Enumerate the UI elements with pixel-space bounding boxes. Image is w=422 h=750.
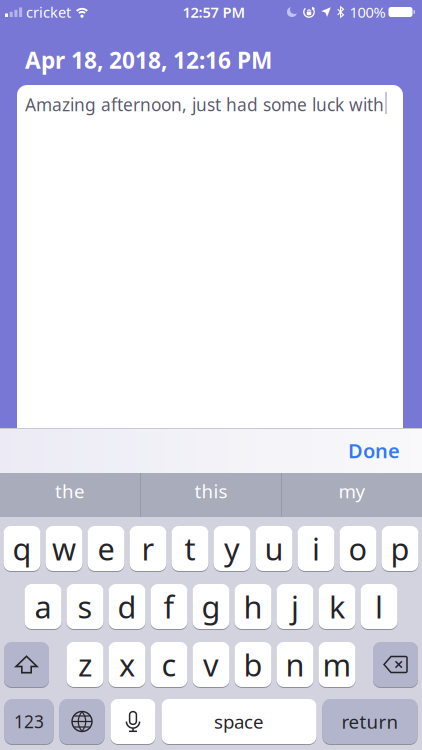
button[interactable]: w <box>45 526 82 571</box>
button[interactable]: b <box>234 642 271 687</box>
staticText: g <box>201 586 220 627</box>
button[interactable]: s <box>66 584 103 629</box>
button[interactable]: r <box>129 526 166 571</box>
staticText: b <box>243 644 262 685</box>
staticText: n <box>285 644 304 685</box>
button[interactable]: Done <box>348 437 422 464</box>
staticText: 123 <box>14 710 44 733</box>
button[interactable]: c <box>150 642 187 687</box>
staticText: 100% <box>349 2 385 22</box>
button[interactable]: return <box>322 699 417 744</box>
staticText: m <box>322 644 351 685</box>
button[interactable]: l <box>360 584 397 629</box>
button[interactable]: a <box>24 584 61 629</box>
button[interactable]: n <box>276 642 313 687</box>
button[interactable]: j <box>276 584 313 629</box>
staticText: s <box>77 586 92 627</box>
button[interactable]: h <box>234 584 271 629</box>
staticText: w <box>52 528 76 569</box>
staticText: this <box>194 479 227 503</box>
textField[interactable]: Amazing afternoon, just had some luck wi… <box>25 93 395 116</box>
staticText: k <box>329 586 345 627</box>
staticText: h <box>243 586 262 627</box>
staticText: space <box>214 709 264 734</box>
staticText: Amazing afternoon, just had some luck wi… <box>25 93 384 116</box>
staticText: Done <box>348 437 400 464</box>
staticText: x <box>119 644 135 685</box>
staticText: j <box>291 586 299 627</box>
button[interactable]: u <box>255 526 292 571</box>
staticText: return <box>341 709 398 734</box>
button[interactable]: Delete <box>373 642 418 687</box>
button[interactable]: m <box>318 642 355 687</box>
staticText: the <box>55 479 85 503</box>
button[interactable]: space <box>161 699 316 744</box>
button[interactable]: z <box>66 642 103 687</box>
button[interactable]: k <box>318 584 355 629</box>
staticText: cricket <box>26 2 71 22</box>
staticText: v <box>203 644 219 685</box>
staticText: y <box>224 528 240 569</box>
button[interactable]: f <box>150 584 187 629</box>
button[interactable]: o <box>339 526 376 571</box>
staticText: my <box>338 479 365 503</box>
staticText: l <box>375 586 383 627</box>
button[interactable]: d <box>108 584 145 629</box>
button[interactable]: x <box>108 642 145 687</box>
button[interactable]: this <box>141 473 281 517</box>
staticText: z <box>78 644 92 685</box>
staticText: p <box>390 528 409 569</box>
button[interactable]: 123 <box>4 699 53 744</box>
button[interactable]: Shift <box>4 642 49 687</box>
button[interactable]: v <box>192 642 229 687</box>
staticText: a <box>34 586 51 627</box>
button[interactable]: y <box>213 526 250 571</box>
staticText: t <box>184 528 195 569</box>
button[interactable]: i <box>297 526 334 571</box>
staticText: u <box>264 528 283 569</box>
button[interactable]: q <box>3 526 40 571</box>
button[interactable]: e <box>87 526 124 571</box>
staticText: o <box>348 528 367 569</box>
staticText: r <box>141 528 154 569</box>
button[interactable]: my <box>282 473 422 517</box>
staticText: Apr 18, 2018, 12:16 PM <box>25 45 272 75</box>
button[interactable]: Next keyboard <box>59 699 104 744</box>
staticText: q <box>12 528 31 569</box>
staticText: d <box>117 586 136 627</box>
button[interactable]: Dictate <box>110 699 155 744</box>
staticText: c <box>161 644 176 685</box>
staticText: 12:57 PM <box>182 2 245 22</box>
button[interactable]: the <box>0 473 140 517</box>
button[interactable]: g <box>192 584 229 629</box>
button[interactable]: t <box>171 526 208 571</box>
button[interactable]: p <box>381 526 418 571</box>
staticText: f <box>163 586 174 627</box>
staticText: i <box>312 528 320 569</box>
staticText: e <box>97 528 114 569</box>
